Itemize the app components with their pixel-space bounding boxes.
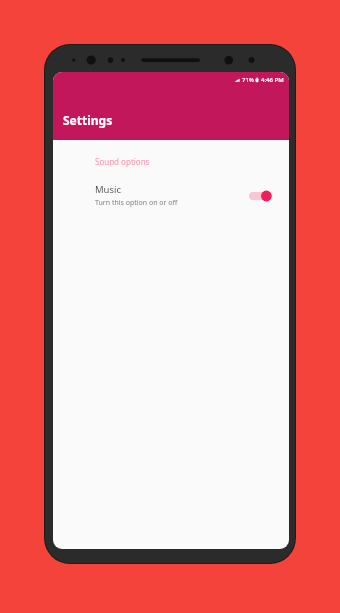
staticText: 71% [242,76,254,84]
staticText: Settings [63,112,113,128]
button[interactable]: Music toggle, on [249,187,275,205]
button[interactable]: Music [53,179,289,214]
staticText: 4:46 PM [261,76,284,84]
staticText: Sound options [95,156,150,167]
staticText: Music [95,183,122,196]
staticText: Turn this option on or off [95,198,178,208]
